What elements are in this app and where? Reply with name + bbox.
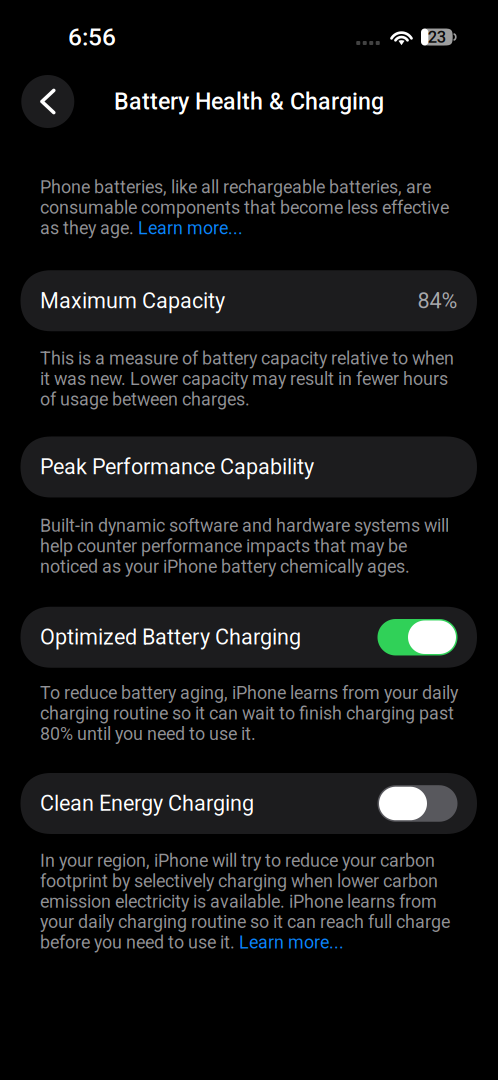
- staticText: 6:56: [68, 23, 116, 51]
- staticText: Built-in dynamic software and hardware s…: [40, 515, 449, 577]
- staticText: 84%: [417, 288, 457, 313]
- staticText: Peak Performance Capability: [40, 454, 314, 480]
- button[interactable]: Maximum Capacity: [20, 270, 477, 331]
- button[interactable]: Optimized Battery Charging: [20, 607, 477, 668]
- button[interactable]: Peak Performance Capability: [20, 436, 477, 497]
- staticText: Battery Health & Charging: [114, 88, 384, 115]
- staticText: Maximum Capacity: [40, 288, 225, 313]
- staticText: To reduce battery aging, iPhone learns f…: [40, 683, 458, 744]
- button[interactable]: Back: [21, 75, 74, 128]
- staticText: Clean Energy Charging: [40, 791, 254, 816]
- staticText: In your region, iPhone will try to reduc…: [40, 850, 450, 953]
- staticText: This is a measure of battery capacity re…: [40, 348, 454, 409]
- staticText: 23: [428, 27, 446, 47]
- staticText: Optimized Battery Charging: [40, 625, 301, 650]
- button[interactable]: Clean Energy Charging: [20, 773, 477, 834]
- staticText: Phone batteries, like all rechargeable b…: [40, 177, 449, 238]
